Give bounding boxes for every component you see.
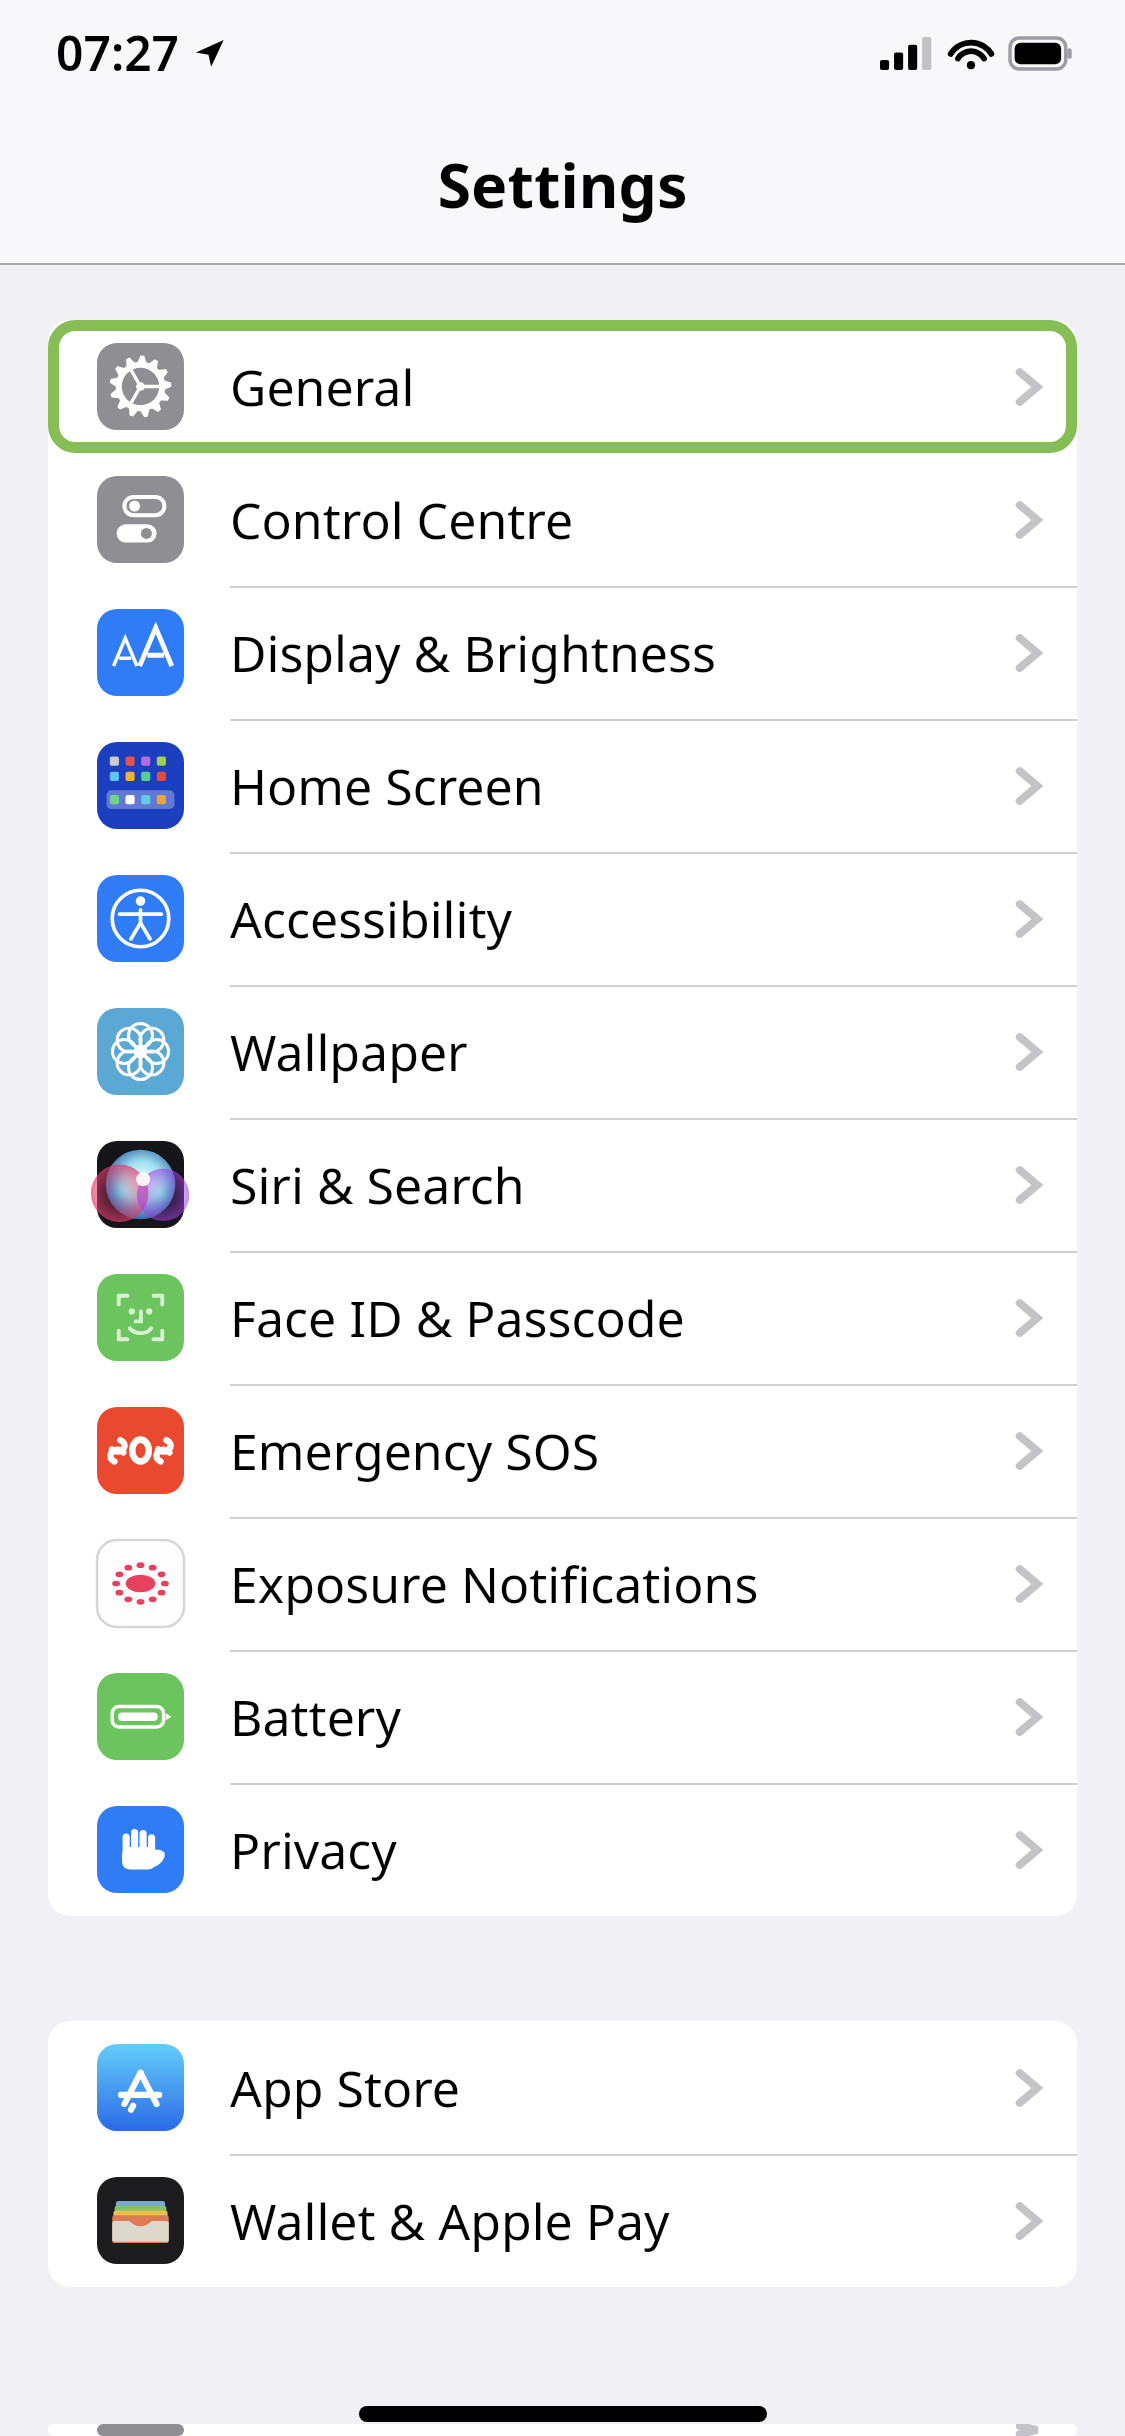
staticText: Face ID & Passcode — [230, 1284, 685, 1352]
button[interactable]: Display & Brightness — [48, 586, 1077, 719]
button[interactable]: Siri & Search — [48, 1118, 1077, 1251]
button[interactable]: Passwords — [48, 2424, 1077, 2436]
staticText: Siri & Search — [230, 1151, 525, 1219]
staticText: Exposure Notifications — [230, 1550, 759, 1618]
button[interactable]: Wallpaper — [48, 985, 1077, 1118]
staticText: 07:27 — [56, 20, 180, 85]
staticText: App Store — [230, 2054, 461, 2122]
staticText: Accessibility — [230, 885, 512, 953]
button[interactable]: Wallet & Apple Pay — [48, 2154, 1077, 2287]
staticText: Privacy — [230, 1816, 397, 1884]
staticText: Battery — [230, 1683, 401, 1751]
staticText: Wallpaper — [230, 1018, 468, 1086]
button[interactable]: Exposure Notifications — [48, 1517, 1077, 1650]
button[interactable]: Emergency SOS — [48, 1384, 1077, 1517]
staticText: Display & Brightness — [230, 619, 716, 687]
staticText: Control Centre — [230, 486, 574, 554]
staticText: Wallet & Apple Pay — [230, 2187, 670, 2255]
button[interactable]: Privacy — [48, 1783, 1077, 1916]
staticText: Emergency SOS — [230, 1417, 600, 1485]
staticText: Settings — [437, 143, 688, 226]
button[interactable]: Home Screen — [48, 719, 1077, 852]
staticText: General — [230, 353, 415, 421]
button[interactable]: Battery — [48, 1650, 1077, 1783]
button[interactable]: Face ID & Passcode — [48, 1251, 1077, 1384]
button[interactable]: General — [48, 320, 1077, 453]
button[interactable]: Control Centre — [48, 453, 1077, 586]
staticText: Home Screen — [230, 752, 544, 820]
button[interactable]: App Store — [48, 2021, 1077, 2154]
button[interactable]: Accessibility — [48, 852, 1077, 985]
